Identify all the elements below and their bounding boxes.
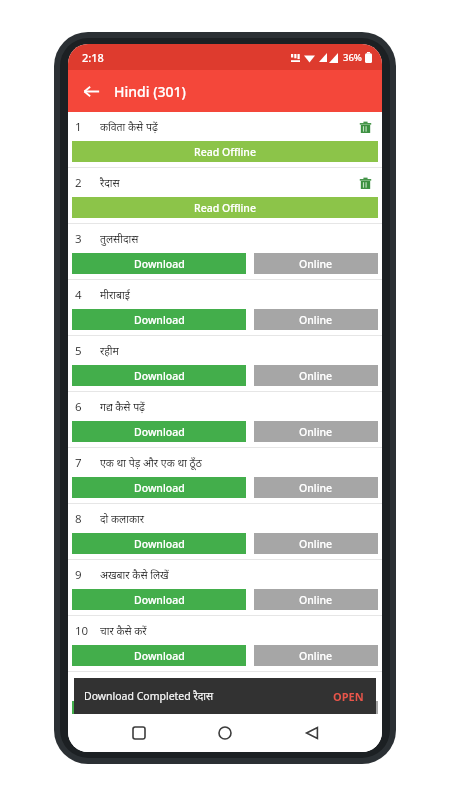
button[interactable]: Download bbox=[72, 701, 246, 722]
staticText: Online bbox=[299, 649, 333, 663]
staticText: Download bbox=[134, 369, 185, 383]
button[interactable]: 3 bbox=[68, 224, 382, 280]
staticText: मीराबाई bbox=[100, 288, 130, 302]
staticText: Download bbox=[134, 481, 185, 495]
button[interactable]: Download bbox=[72, 589, 246, 610]
staticText: कविता कैसे पढ़ें bbox=[100, 120, 158, 134]
staticText: एक था पेड़ और एक था ठूँठ bbox=[100, 456, 202, 470]
staticText: 5 bbox=[75, 343, 82, 359]
button[interactable]: Online bbox=[254, 309, 378, 330]
staticText: Online bbox=[299, 425, 333, 439]
staticText: तुलसीदास bbox=[100, 232, 139, 246]
staticText: Download Completed रैदास bbox=[84, 689, 214, 703]
staticText: 36% bbox=[343, 51, 362, 64]
button[interactable]: Delete bbox=[356, 174, 374, 192]
staticText: दो कलाकार bbox=[100, 512, 145, 526]
button[interactable]: Read Offline bbox=[72, 197, 378, 218]
staticText: 3 bbox=[75, 231, 82, 247]
button[interactable]: Online bbox=[254, 589, 378, 610]
button[interactable]: Online bbox=[254, 421, 378, 442]
staticText: Download bbox=[134, 537, 185, 551]
button[interactable]: Download bbox=[72, 645, 246, 666]
staticText: 9 bbox=[75, 567, 82, 583]
button[interactable]: Back bbox=[74, 74, 108, 108]
button[interactable]: 2 bbox=[68, 168, 382, 224]
button[interactable]: 10 bbox=[68, 616, 382, 672]
staticText: 4 bbox=[75, 287, 82, 303]
button[interactable]: Online bbox=[254, 533, 378, 554]
button[interactable]: Download bbox=[68, 672, 382, 728]
staticText: Online bbox=[299, 481, 333, 495]
button[interactable]: 1 bbox=[68, 112, 382, 168]
staticText: 7 bbox=[75, 455, 82, 471]
button[interactable]: Download bbox=[72, 253, 246, 274]
staticText: चार कैसे करें bbox=[100, 624, 147, 638]
button[interactable]: Download bbox=[72, 365, 246, 386]
staticText: गद्य कैसे पढ़ें bbox=[100, 400, 146, 414]
staticText: Read Offline bbox=[194, 145, 256, 159]
staticText: Online bbox=[299, 537, 333, 551]
button[interactable]: Back bbox=[296, 717, 328, 749]
staticText: Hindi (301) bbox=[114, 82, 186, 101]
staticText: Online bbox=[299, 593, 333, 607]
button[interactable]: Online bbox=[254, 477, 378, 498]
button[interactable]: Recent apps bbox=[123, 717, 155, 749]
staticText: Online bbox=[299, 705, 333, 719]
button[interactable]: Download bbox=[72, 309, 246, 330]
staticText: 2 bbox=[75, 175, 82, 191]
button[interactable]: Download bbox=[72, 421, 246, 442]
button[interactable]: 7 bbox=[68, 448, 382, 504]
staticText: Download bbox=[134, 257, 185, 271]
button[interactable]: Read Offline bbox=[72, 141, 378, 162]
button[interactable]: Online bbox=[254, 645, 378, 666]
staticText: 1 bbox=[75, 119, 82, 135]
staticText: Download bbox=[134, 649, 185, 663]
staticText: Online bbox=[299, 369, 333, 383]
staticText: OPEN bbox=[333, 689, 364, 704]
staticText: रैदास bbox=[100, 176, 120, 190]
button[interactable]: Online bbox=[254, 365, 378, 386]
staticText: Download bbox=[134, 593, 185, 607]
staticText: Online bbox=[299, 257, 333, 271]
button[interactable]: 8 bbox=[68, 504, 382, 560]
button[interactable]: Home bbox=[209, 717, 241, 749]
staticText: 10 bbox=[75, 623, 89, 639]
staticText: Download bbox=[134, 313, 185, 327]
button[interactable]: Online bbox=[254, 253, 378, 274]
button[interactable]: 6 bbox=[68, 392, 382, 448]
button[interactable]: Download bbox=[72, 533, 246, 554]
button[interactable]: OPEN bbox=[329, 685, 368, 708]
staticText: 8 bbox=[75, 511, 82, 527]
staticText: Download bbox=[134, 705, 185, 719]
staticText: 2:18 bbox=[82, 50, 104, 65]
button[interactable]: Download Completed रैदास bbox=[74, 678, 376, 714]
staticText: 6 bbox=[75, 399, 82, 415]
button[interactable]: 4 bbox=[68, 280, 382, 336]
button[interactable]: 5 bbox=[68, 336, 382, 392]
staticText: Download bbox=[134, 425, 185, 439]
staticText: रहीम bbox=[100, 344, 119, 358]
button[interactable]: Download bbox=[72, 477, 246, 498]
button[interactable]: Delete bbox=[356, 118, 374, 136]
button[interactable]: 9 bbox=[68, 560, 382, 616]
button[interactable]: Online bbox=[254, 701, 378, 722]
staticText: Online bbox=[299, 313, 333, 327]
staticText: Read Offline bbox=[194, 201, 256, 215]
staticText: अखबार कैसे लिखें bbox=[100, 568, 169, 582]
